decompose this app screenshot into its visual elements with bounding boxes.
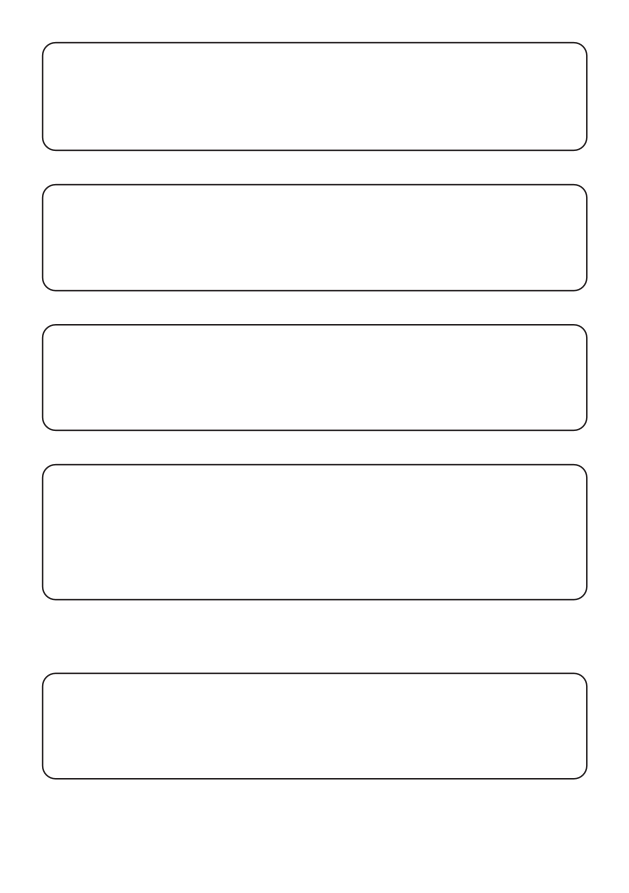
button[interactable]: Card 4 xyxy=(43,465,587,600)
button[interactable]: Card 1 xyxy=(43,43,587,150)
button[interactable]: Card 3 xyxy=(43,325,587,430)
button[interactable]: Card 2 xyxy=(43,185,587,291)
button[interactable]: Card 5 xyxy=(43,673,587,779)
